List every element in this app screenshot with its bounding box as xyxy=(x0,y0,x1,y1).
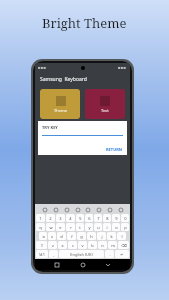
staticText: p xyxy=(124,225,127,230)
staticText: Samsung Keyboard xyxy=(40,76,87,83)
button[interactable]: English (UK) xyxy=(59,250,104,258)
staticText: 8 xyxy=(106,216,109,221)
button[interactable]: q xyxy=(36,223,45,231)
button[interactable] xyxy=(79,261,87,269)
button[interactable]: t xyxy=(76,223,84,231)
staticText: j xyxy=(101,234,103,239)
button[interactable]: u xyxy=(94,223,102,231)
staticText: , xyxy=(53,252,55,257)
button[interactable]: 3 xyxy=(56,214,65,222)
staticText: r xyxy=(70,225,72,230)
staticText: ⌫ xyxy=(121,243,127,248)
staticText: Bright Theme xyxy=(42,14,127,32)
staticText: l xyxy=(121,234,123,239)
staticText: ▪▪▪ xyxy=(38,65,47,70)
button[interactable] xyxy=(96,207,101,212)
button[interactable]: y xyxy=(85,223,93,231)
staticText: a xyxy=(42,234,45,239)
staticText: v xyxy=(81,243,84,248)
staticText: e xyxy=(59,225,62,230)
staticText: 1 xyxy=(39,216,42,221)
button[interactable]: 1 xyxy=(36,214,45,222)
button[interactable]: 6 xyxy=(85,214,93,222)
staticText: w xyxy=(49,225,53,230)
button[interactable]: 7 xyxy=(94,214,102,222)
button[interactable]: r xyxy=(66,223,75,231)
button[interactable] xyxy=(75,207,80,212)
button[interactable]: ⇧ xyxy=(36,241,47,249)
button[interactable]: v xyxy=(78,241,87,249)
button[interactable]: l xyxy=(117,232,126,240)
button[interactable]: ⌫ xyxy=(118,241,129,249)
button[interactable] xyxy=(64,207,69,212)
staticText: c xyxy=(72,243,74,248)
staticText: 5 xyxy=(79,216,82,221)
staticText: i xyxy=(106,225,108,230)
button[interactable]: p xyxy=(121,223,129,231)
button[interactable]: c xyxy=(68,241,77,249)
button[interactable]: !#1 xyxy=(36,250,48,258)
button[interactable]: 2 xyxy=(46,214,55,222)
button[interactable]: w xyxy=(46,223,55,231)
staticText: 6 xyxy=(88,216,91,221)
button[interactable]: 0 xyxy=(121,214,129,222)
staticText: 0 xyxy=(124,216,127,221)
staticText: b xyxy=(91,243,94,248)
button[interactable] xyxy=(53,207,58,212)
staticText: u xyxy=(97,225,100,230)
staticText: 4 xyxy=(69,216,72,221)
staticText: 7 xyxy=(97,216,100,221)
button[interactable]: Theme xyxy=(40,89,80,119)
button[interactable]: s xyxy=(48,232,56,240)
button[interactable]: i xyxy=(103,223,111,231)
staticText: n xyxy=(101,243,104,248)
button[interactable] xyxy=(85,207,90,212)
button[interactable]: ↵ xyxy=(115,250,129,258)
staticText: g xyxy=(80,234,83,239)
button[interactable]: d xyxy=(57,232,66,240)
button[interactable]: , xyxy=(49,250,58,258)
button[interactable]: 8 xyxy=(103,214,111,222)
staticText: m xyxy=(111,243,115,248)
button[interactable] xyxy=(53,261,61,269)
button[interactable]: e xyxy=(56,223,65,231)
staticText: 3 xyxy=(59,216,62,221)
staticText: ▪▪▪ xyxy=(118,65,127,70)
button[interactable]: g xyxy=(77,232,86,240)
button[interactable]: . xyxy=(105,250,114,258)
button[interactable]: Text xyxy=(85,123,125,153)
button[interactable] xyxy=(104,261,112,269)
button[interactable]: z xyxy=(48,241,57,249)
button[interactable]: k xyxy=(107,232,116,240)
staticText: z xyxy=(52,243,54,248)
staticText: RETURN xyxy=(106,147,123,152)
button[interactable]: m xyxy=(108,241,117,249)
staticText: x xyxy=(61,243,64,248)
button[interactable]: f xyxy=(67,232,76,240)
button[interactable]: b xyxy=(88,241,97,249)
staticText: f xyxy=(71,234,73,239)
staticText: 2 xyxy=(49,216,52,221)
button[interactable]: Theme xyxy=(40,123,80,153)
button[interactable]: 4 xyxy=(66,214,75,222)
button[interactable]: x xyxy=(58,241,67,249)
button[interactable] xyxy=(118,207,123,212)
button[interactable]: j xyxy=(97,232,106,240)
button[interactable] xyxy=(107,207,112,212)
staticText: q xyxy=(39,225,42,230)
staticText: s xyxy=(51,234,53,239)
button[interactable]: n xyxy=(98,241,107,249)
button[interactable]: 9 xyxy=(112,214,120,222)
staticText: English (UK) xyxy=(70,252,93,257)
button[interactable]: 5 xyxy=(76,214,84,222)
button[interactable]: h xyxy=(87,232,96,240)
button[interactable]: Text xyxy=(85,89,125,119)
button[interactable]: a xyxy=(39,232,47,240)
staticText: k xyxy=(110,234,113,239)
staticText: TRY KEY xyxy=(42,125,58,130)
button[interactable]: o xyxy=(112,223,120,231)
staticText: !#1 xyxy=(39,252,45,257)
staticText: Theme xyxy=(54,108,67,113)
button[interactable] xyxy=(42,207,47,212)
